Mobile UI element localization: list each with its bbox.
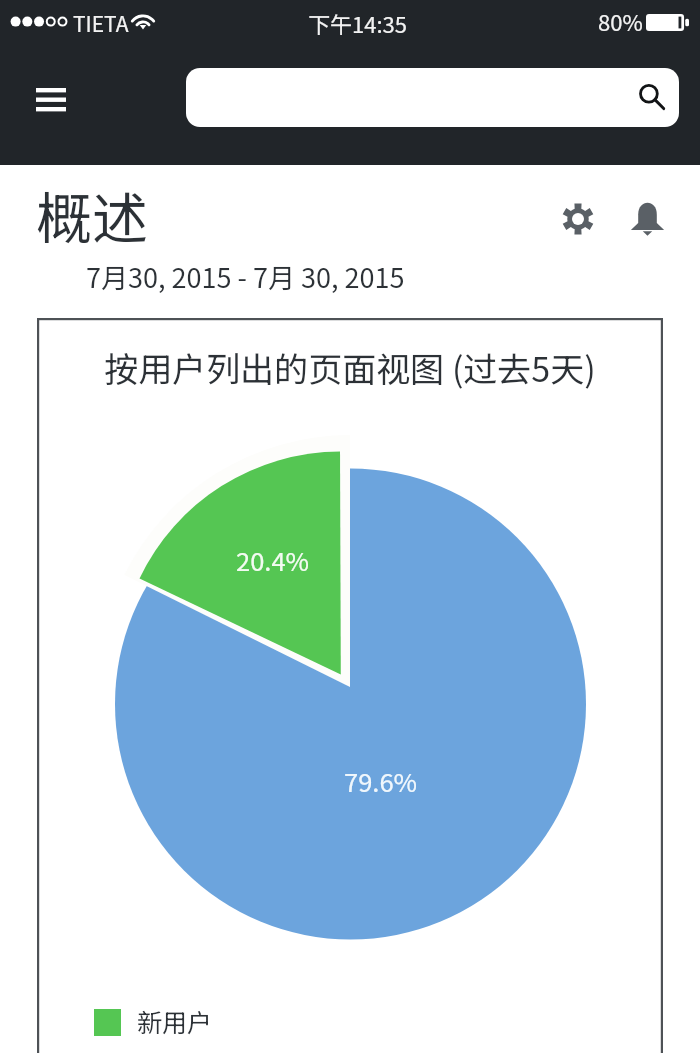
button[interactable]: Menu bbox=[22, 76, 80, 124]
button[interactable]: Search bbox=[186, 68, 679, 127]
staticText: TIETA bbox=[73, 8, 129, 38]
staticText: 80% bbox=[598, 5, 643, 37]
staticText: 概述 bbox=[36, 174, 148, 255]
staticText: 79.6% bbox=[344, 762, 418, 799]
staticText: 20.4% bbox=[236, 541, 310, 578]
other: Search bbox=[623, 78, 663, 118]
staticText: 按用户列出的页面视图 (过去5天) bbox=[37, 343, 663, 392]
button[interactable]: Settings bbox=[554, 195, 602, 243]
staticText: 新用户 bbox=[137, 1003, 213, 1039]
staticText: 7月30, 2015 - 7月 30, 2015 bbox=[86, 257, 405, 296]
staticText: 下午14:35 bbox=[308, 7, 407, 39]
button[interactable]: Notifications bbox=[623, 190, 671, 238]
